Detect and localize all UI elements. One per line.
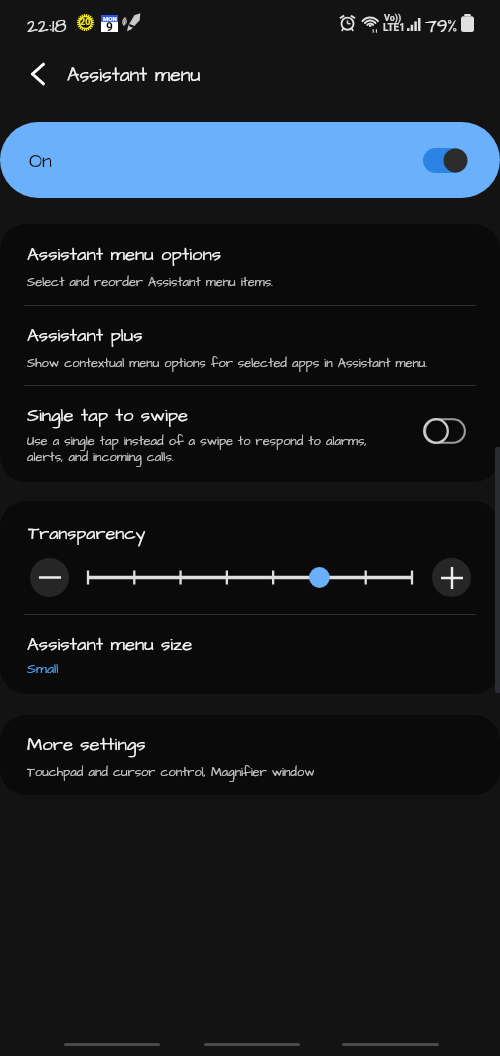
staticText: Vo))	[384, 13, 402, 24]
staticText: LTE1	[383, 22, 405, 34]
button[interactable]: Transparency level	[80, 563, 420, 592]
staticText: Assistant plus	[27, 323, 143, 349]
button[interactable]: Single tap to swipe	[0, 386, 500, 482]
staticText: Select and reorder Assistant menu items.	[27, 273, 273, 291]
button[interactable]: Increase transparency	[432, 558, 471, 597]
staticText: On	[29, 148, 52, 175]
staticText: Use a single tap instead of a swipe to r…	[27, 432, 367, 466]
staticText: Touchpad and cursor control, Magnifier w…	[27, 763, 315, 781]
staticText: Transparency	[28, 521, 146, 546]
button[interactable]: More settings	[0, 715, 500, 795]
staticText: Assistant menu size	[27, 632, 193, 658]
staticText: More settings	[27, 732, 146, 758]
button[interactable]: Recents	[52, 1032, 172, 1056]
staticText: Show contextual menu options for selecte…	[27, 354, 428, 372]
button[interactable]: Assistant menu options	[0, 224, 500, 305]
button[interactable]: Back	[330, 1032, 451, 1056]
staticText: Small	[27, 659, 59, 678]
staticText: 22:18	[27, 13, 67, 39]
button[interactable]: Assistant menu size	[0, 615, 500, 694]
staticText: 9	[106, 20, 113, 34]
staticText: Single tap to swipe	[27, 403, 189, 429]
button[interactable]: Home	[192, 1032, 312, 1056]
staticText: Assistant menu options	[27, 242, 221, 268]
button[interactable]: Assistant plus	[0, 306, 500, 385]
button[interactable]: Back	[16, 52, 60, 96]
button[interactable]: On	[0, 122, 500, 198]
staticText: Assistant menu	[67, 62, 201, 89]
staticText: 20	[80, 17, 91, 28]
staticText: MON	[103, 15, 117, 22]
staticText: 79%	[425, 13, 458, 39]
button[interactable]: Decrease transparency	[30, 558, 69, 597]
